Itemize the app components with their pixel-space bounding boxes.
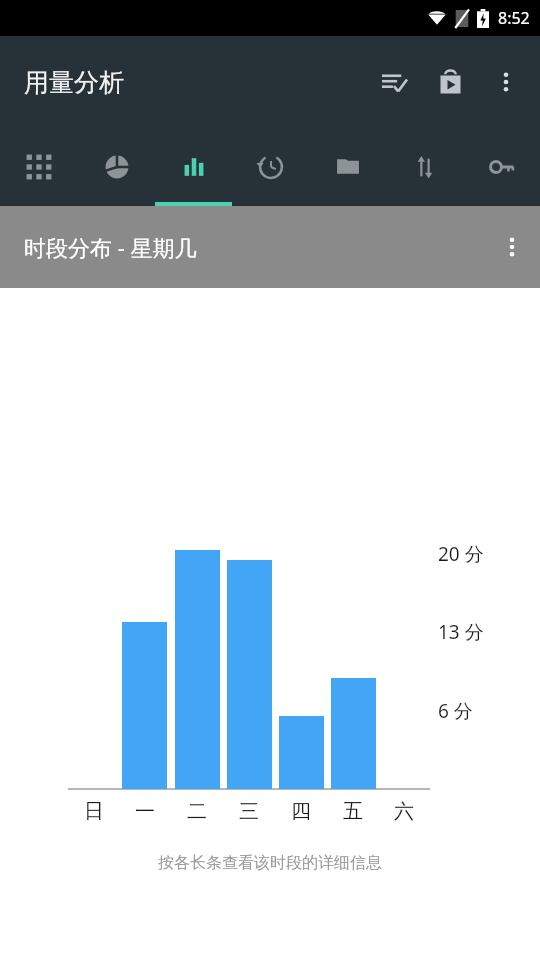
button[interactable]: Transfer [386,128,463,206]
button[interactable]: Apps [0,128,78,206]
button[interactable]: Sort [366,54,422,110]
button[interactable]: 四 [283,795,319,827]
staticText: 按各长条查看该时段的详细信息 [158,853,382,873]
staticText: 用量分析 [24,67,124,98]
button[interactable]: 一 [127,795,163,827]
button[interactable]: 五 [335,795,371,827]
staticText: 时段分布 - 星期几 [24,232,197,262]
staticText: 二 [187,799,207,824]
staticText: 四 [291,799,311,824]
button[interactable]: More options [478,54,534,110]
button[interactable]: Play Store [422,54,478,110]
button[interactable]: 日 [76,795,112,827]
button[interactable]: Folder [309,128,386,206]
button[interactable]: Permissions [463,128,540,206]
staticText: 五 [343,799,363,824]
staticText: 13 分 [438,619,484,645]
staticText: 6 分 [438,698,473,724]
button[interactable]: 三 [231,795,267,827]
staticText: 日 [84,799,104,824]
staticText: 三 [239,799,259,824]
staticText: 20 分 [438,541,484,567]
staticText: 六 [394,799,414,824]
button[interactable]: Bar chart [155,128,232,206]
button[interactable]: 六 [386,795,422,827]
button[interactable]: History [232,128,309,206]
staticText: 一 [135,799,155,824]
button[interactable]: 二 [179,795,215,827]
button[interactable]: Pie chart [78,128,155,206]
staticText: 8:52 [498,7,530,29]
button[interactable]: Chart options [484,219,540,275]
